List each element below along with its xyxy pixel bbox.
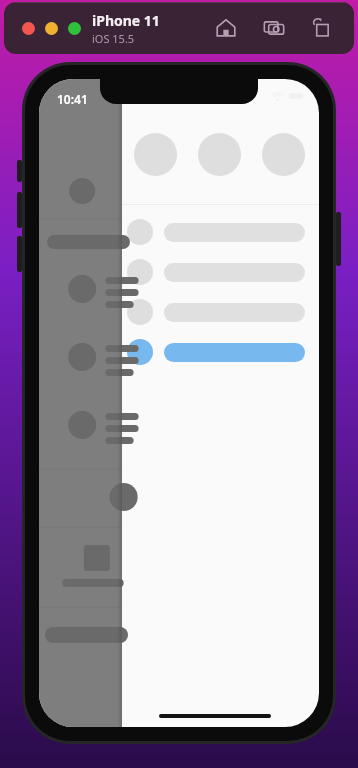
button[interactable]: Screenshot bbox=[260, 14, 288, 42]
other: Item 2 bbox=[127, 259, 153, 285]
staticText: iOS 15.5 bbox=[92, 31, 135, 46]
button[interactable]: Close bbox=[22, 22, 35, 35]
button[interactable]: Minimize bbox=[45, 22, 58, 35]
button[interactable]: Home bbox=[212, 14, 240, 42]
button[interactable]: Power bbox=[336, 212, 341, 266]
button[interactable]: Item 1 bbox=[127, 219, 305, 245]
button[interactable]: Volume down 2 bbox=[17, 236, 22, 272]
other: Item 1 bbox=[127, 219, 153, 245]
other: Item 4, selected bbox=[127, 339, 153, 365]
button[interactable]: Item 3 bbox=[127, 299, 305, 325]
button[interactable]: Story 2 bbox=[198, 133, 241, 176]
button[interactable]: Zoom bbox=[68, 22, 81, 35]
button[interactable]: Close navigation drawer bbox=[39, 79, 122, 727]
button[interactable]: Item 2 bbox=[127, 259, 305, 285]
button[interactable]: Rotate bbox=[308, 14, 336, 42]
button[interactable]: Item 4, selected bbox=[127, 339, 305, 365]
staticText: iPhone 11 bbox=[92, 11, 160, 30]
button[interactable]: Volume down bbox=[17, 192, 22, 228]
button[interactable]: Story 3 bbox=[262, 133, 305, 176]
other: Item 3 bbox=[127, 299, 153, 325]
button[interactable]: Volume up bbox=[17, 160, 22, 182]
button[interactable]: Story 1 bbox=[134, 133, 177, 176]
staticText: 10:41 bbox=[57, 91, 88, 107]
